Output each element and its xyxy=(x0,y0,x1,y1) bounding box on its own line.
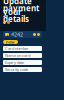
staticText: Add new card xyxy=(6,34,15,50)
button[interactable]: 4242 xyxy=(3,31,42,38)
staticText: Card number xyxy=(5,46,29,51)
staticText: Update your xyxy=(3,0,32,17)
staticText: 4242 xyxy=(11,31,23,38)
staticText: Security code xyxy=(5,67,28,72)
button[interactable]: Add new card xyxy=(3,40,18,44)
staticText: payment details xyxy=(3,3,39,24)
staticText: Name on card xyxy=(5,53,30,58)
staticText: Expiry date xyxy=(5,60,24,65)
